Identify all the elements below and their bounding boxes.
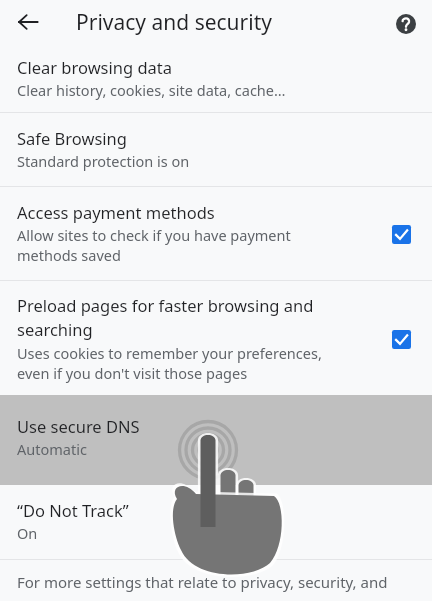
button[interactable]: Toggle Preload pages for faster browsing… [384,322,418,356]
staticText: On [17,523,38,543]
button[interactable]: Safe Browsing [0,113,432,186]
staticText: Clear browsing data [17,56,173,78]
staticText: Preload pages for faster browsing and se… [17,294,314,341]
button[interactable]: Back [8,2,48,42]
button[interactable]: Clear browsing data [0,45,432,112]
button[interactable]: Toggle Access payment methods [384,217,418,251]
staticText: Automatic [17,439,87,459]
staticText: Privacy and security [76,8,272,37]
staticText: Allow sites to check if you have payment… [17,225,291,266]
staticText: Clear history, cookies, site data, cache… [17,80,286,100]
button[interactable]: Access payment methods [0,187,432,280]
button[interactable]: Help [388,6,424,42]
button[interactable]: Use secure DNS [0,395,432,485]
staticText: “Do Not Track” [17,499,129,521]
button[interactable]: Preload pages for faster browsing and se… [0,281,432,395]
staticText: For more settings that relate to privacy… [17,572,388,592]
staticText: Standard protection is on [17,151,190,171]
staticText: Use secure DNS [17,415,140,437]
staticText: Access payment methods [17,201,215,223]
staticText: Safe Browsing [17,127,127,149]
button[interactable]: “Do Not Track” [0,485,432,559]
staticText: Uses cookies to remember your preference… [17,343,322,384]
